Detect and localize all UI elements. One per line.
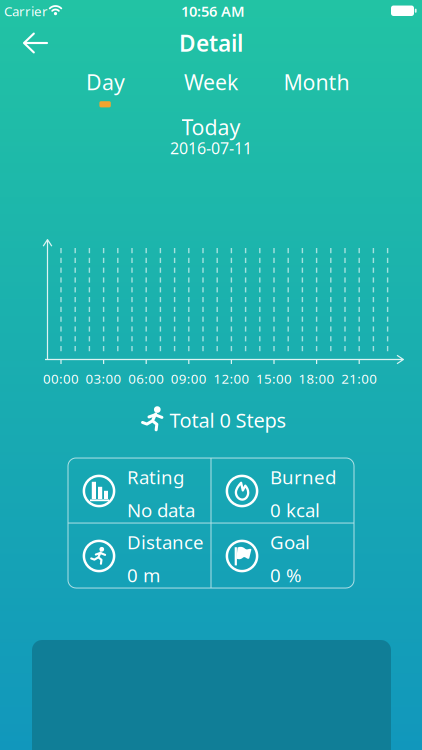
- staticText: 2016-07-11: [170, 137, 252, 159]
- staticText: Month: [283, 68, 349, 96]
- staticText: Day: [86, 68, 125, 96]
- staticText: Today: [181, 113, 240, 141]
- staticText: 00:00: [43, 370, 79, 387]
- staticText: 12:00: [213, 370, 249, 387]
- button[interactable]: Back: [13, 21, 57, 65]
- staticText: 15:00: [256, 370, 292, 387]
- button[interactable]: Month: [264, 62, 369, 102]
- staticText: 09:00: [171, 370, 207, 387]
- staticText: 03:00: [86, 370, 122, 387]
- staticText: Distance: [127, 530, 204, 554]
- staticText: 0 kcal: [270, 498, 320, 522]
- staticText: 21:00: [341, 370, 377, 387]
- staticText: Goal: [270, 530, 310, 554]
- button[interactable]: Day: [53, 62, 158, 102]
- staticText: 0 %: [270, 563, 302, 587]
- button[interactable]: Week: [158, 62, 263, 102]
- staticText: Rating: [127, 465, 184, 489]
- staticText: 0 m: [127, 563, 160, 587]
- staticText: Total 0 Steps: [169, 407, 286, 433]
- staticText: No data: [127, 498, 195, 522]
- staticText: 10:56 AM: [181, 1, 245, 21]
- staticText: Week: [184, 68, 238, 96]
- staticText: 18:00: [299, 370, 335, 387]
- staticText: Carrier: [4, 2, 48, 20]
- staticText: 06:00: [128, 370, 164, 387]
- staticText: Burned: [270, 465, 336, 489]
- staticText: Detail: [179, 28, 243, 58]
